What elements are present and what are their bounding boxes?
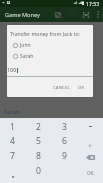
button[interactable]: 3	[51, 119, 77, 134]
button[interactable]: 5	[25, 133, 51, 148]
button[interactable]: Sarah	[7, 51, 93, 62]
staticText: ,	[89, 137, 92, 149]
staticText: 1	[10, 121, 15, 133]
button[interactable]: 4	[0, 133, 25, 148]
button[interactable]: ,	[77, 133, 103, 148]
staticText: Sarah	[20, 53, 34, 60]
button[interactable]: Sarah	[4, 108, 20, 115]
button[interactable]	[77, 148, 103, 163]
button[interactable]: 8	[25, 148, 51, 163]
button[interactable]: Edit	[52, 7, 64, 22]
button[interactable]: 2	[25, 119, 51, 134]
button[interactable]: 1	[0, 119, 25, 134]
button[interactable]: More options	[92, 7, 103, 22]
button[interactable]: Save	[80, 7, 92, 22]
button[interactable]: 9	[51, 148, 77, 163]
button[interactable]: CANCEL	[51, 83, 72, 93]
button[interactable]: OK	[77, 163, 103, 178]
button[interactable]	[77, 119, 103, 134]
staticText: 3	[62, 121, 67, 133]
staticText: OK	[87, 170, 94, 176]
staticText: John	[20, 42, 31, 49]
staticText: 6	[62, 135, 67, 147]
button[interactable]: 0	[25, 163, 51, 178]
button[interactable]	[0, 163, 25, 178]
staticText: 7	[10, 150, 15, 162]
button[interactable]: 6	[51, 133, 77, 148]
staticText: 17:53	[86, 0, 100, 7]
staticText: 100	[7, 66, 17, 73]
staticText: 8	[36, 150, 41, 162]
staticText: 2	[36, 121, 41, 133]
staticText: 9	[62, 150, 67, 162]
staticText: Transfer money from Jack to:	[10, 30, 80, 37]
staticText: 4	[10, 135, 15, 147]
button[interactable]: John	[7, 40, 93, 51]
button[interactable]: Sync	[66, 7, 78, 22]
button[interactable]: 7	[0, 148, 25, 163]
staticText: 5	[36, 135, 41, 147]
staticText: 0	[36, 165, 41, 177]
button[interactable]: OK	[76, 83, 87, 93]
staticText: Game Money	[5, 11, 40, 19]
